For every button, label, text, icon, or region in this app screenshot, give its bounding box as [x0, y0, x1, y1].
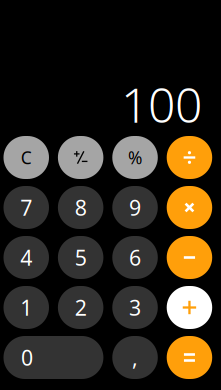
- button[interactable]: 8: [58, 186, 103, 229]
- button[interactable]: 9: [112, 186, 158, 229]
- button[interactable]: Multiply: [167, 186, 212, 229]
- staticText: 8: [75, 193, 87, 222]
- button[interactable]: 2: [58, 286, 103, 329]
- button[interactable]: Subtract: [167, 236, 212, 279]
- staticText: 9: [129, 193, 141, 222]
- staticText: 4: [20, 243, 32, 272]
- staticText: 100: [121, 72, 202, 136]
- button[interactable]: Divide: [167, 136, 212, 179]
- button[interactable]: 5: [58, 236, 103, 279]
- staticText: C: [21, 146, 32, 169]
- staticText: 1: [20, 293, 32, 322]
- staticText: 6: [129, 243, 141, 272]
- button[interactable]: C: [3, 136, 49, 179]
- button[interactable]: Equals: [167, 336, 212, 379]
- staticText: 3: [129, 293, 141, 322]
- staticText: 7: [20, 193, 32, 222]
- staticText: 5: [75, 243, 87, 272]
- button[interactable]: 3: [112, 286, 158, 329]
- staticText: 2: [75, 293, 87, 322]
- button[interactable]: 6: [112, 236, 158, 279]
- button[interactable]: %: [112, 136, 158, 179]
- staticText: 0: [21, 343, 33, 372]
- staticText: %: [128, 146, 142, 169]
- button[interactable]: 7: [3, 186, 49, 229]
- button[interactable]: 0: [3, 336, 103, 379]
- staticText: ,: [132, 343, 138, 372]
- button[interactable]: 1: [3, 286, 49, 329]
- button[interactable]: Add: [167, 286, 212, 329]
- button[interactable]: 4: [3, 236, 49, 279]
- button[interactable]: ,: [112, 336, 158, 379]
- button[interactable]: Plus minus: [58, 136, 103, 179]
